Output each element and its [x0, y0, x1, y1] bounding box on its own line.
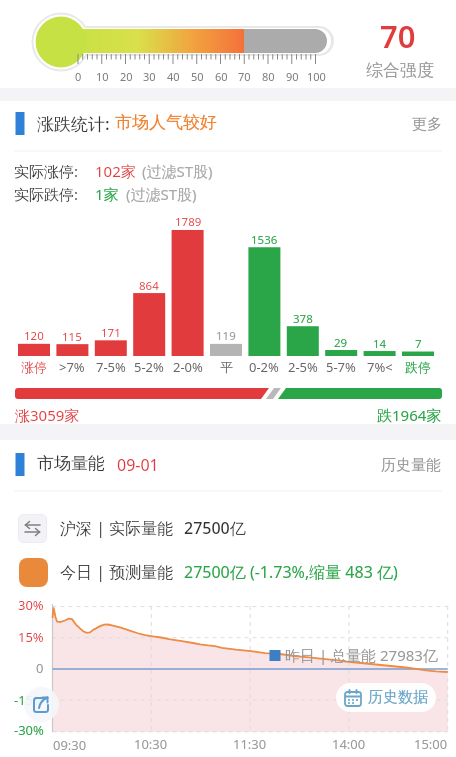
staticText: 7%<	[367, 358, 393, 376]
staticText: 5-7%	[326, 358, 356, 376]
staticText: 119	[216, 328, 236, 344]
staticText: 30	[143, 69, 156, 84]
staticText: 1家	[95, 184, 119, 204]
staticText: 70	[380, 15, 416, 57]
staticText: 历史量能	[381, 456, 441, 475]
staticText: 80	[262, 69, 275, 84]
button[interactable]: 历史量能	[365, 453, 441, 477]
staticText: 0	[36, 659, 44, 677]
staticText: 5-2%	[134, 358, 164, 376]
staticText: 11:30	[233, 735, 267, 753]
staticText: 40	[167, 69, 180, 84]
staticText: 14:00	[332, 735, 366, 753]
staticText: 171	[101, 325, 121, 341]
staticText: 涨3059家	[15, 405, 80, 425]
staticText: 涨跌统计:	[37, 112, 110, 135]
staticText: -30%	[14, 721, 44, 739]
staticText: >7%	[59, 358, 85, 376]
staticText: 实际涨停:	[14, 161, 79, 181]
staticText: 更多	[412, 115, 442, 134]
staticText: -15%	[14, 691, 44, 709]
button[interactable]	[19, 558, 48, 587]
button[interactable]	[24, 687, 59, 722]
staticText: 跌停	[405, 359, 431, 375]
button[interactable]	[18, 514, 47, 543]
staticText: 0-2%	[249, 358, 279, 376]
staticText: 120	[24, 328, 44, 344]
staticText: 100	[307, 69, 326, 84]
staticText: 102家	[95, 161, 136, 181]
staticText: 15:00	[414, 735, 448, 753]
staticText: 27500亿	[184, 517, 246, 539]
staticText: 60	[215, 69, 228, 84]
staticText: 378	[293, 311, 313, 327]
staticText: 1789	[175, 214, 202, 230]
staticText: 864	[139, 278, 159, 294]
button[interactable]: 历史数据	[336, 683, 436, 712]
staticText: 50	[191, 69, 204, 84]
staticText: 市场量能	[37, 453, 105, 474]
staticText: 市场人气较好	[115, 112, 217, 133]
staticText: 今日 | 预测量能	[60, 561, 174, 583]
staticText: 27500亿 (-1.73%,缩量 483 亿)	[184, 561, 398, 583]
staticText: 90	[286, 69, 299, 84]
staticText: 14	[373, 336, 387, 352]
staticText: 70	[238, 69, 251, 84]
staticText: 2-5%	[288, 358, 318, 376]
button[interactable]: 更多	[398, 112, 442, 136]
staticText: 09-01	[117, 454, 159, 476]
staticText: 30%	[18, 596, 44, 614]
staticText: 7-5%	[96, 358, 126, 376]
staticText: 29	[334, 335, 348, 351]
staticText: 0	[75, 69, 82, 84]
staticText: 09:30	[53, 736, 87, 754]
staticText: 平	[220, 359, 233, 375]
staticText: 7	[415, 336, 422, 352]
staticText: 1536	[251, 232, 278, 248]
staticText: 涨停	[21, 359, 47, 375]
staticText: 实际跌停:	[14, 184, 79, 204]
staticText: (过滤ST股)	[126, 184, 197, 204]
staticText: 2-0%	[173, 358, 203, 376]
staticText: 115	[62, 329, 82, 345]
staticText: (过滤ST股)	[142, 161, 213, 181]
staticText: 综合强度	[366, 60, 434, 81]
staticText: 跌1964家	[377, 405, 442, 425]
staticText: 10:30	[134, 735, 168, 753]
staticText: 历史数据	[368, 688, 428, 707]
staticText: 沪深 | 实际量能	[60, 517, 174, 539]
staticText: 15%	[18, 628, 44, 646]
staticText: 20	[120, 69, 133, 84]
staticText: 10	[96, 69, 109, 84]
staticText: 昨日 | 总量能 27983亿	[285, 645, 438, 665]
